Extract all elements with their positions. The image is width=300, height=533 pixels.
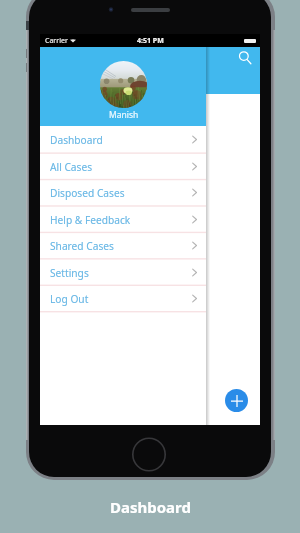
button[interactable]: Shared Cases bbox=[40, 233, 206, 259]
staticText: Help & Feedback bbox=[50, 213, 131, 227]
staticText: Settings bbox=[50, 266, 89, 280]
button[interactable]: All Cases bbox=[40, 154, 206, 180]
staticText: Dashboard bbox=[50, 133, 103, 147]
button[interactable]: Disposed Cases bbox=[40, 180, 206, 206]
staticText: All Cases bbox=[50, 160, 93, 174]
button[interactable]: Dashboard bbox=[40, 127, 206, 153]
staticText: Dashboard bbox=[110, 497, 191, 517]
staticText: Disposed Cases bbox=[50, 186, 125, 200]
button[interactable]: Settings bbox=[40, 260, 206, 286]
staticText: 4:51 PM bbox=[137, 36, 164, 46]
staticText: Shared Cases bbox=[50, 239, 114, 253]
button[interactable]: Log Out bbox=[40, 286, 206, 312]
staticText: Manish bbox=[109, 109, 139, 121]
staticText: Carrier bbox=[45, 36, 68, 46]
staticText: Log Out bbox=[50, 292, 89, 306]
button[interactable]: Add bbox=[225, 389, 248, 412]
button[interactable]: Help & Feedback bbox=[40, 207, 206, 233]
button[interactable]: Search bbox=[236, 49, 254, 67]
